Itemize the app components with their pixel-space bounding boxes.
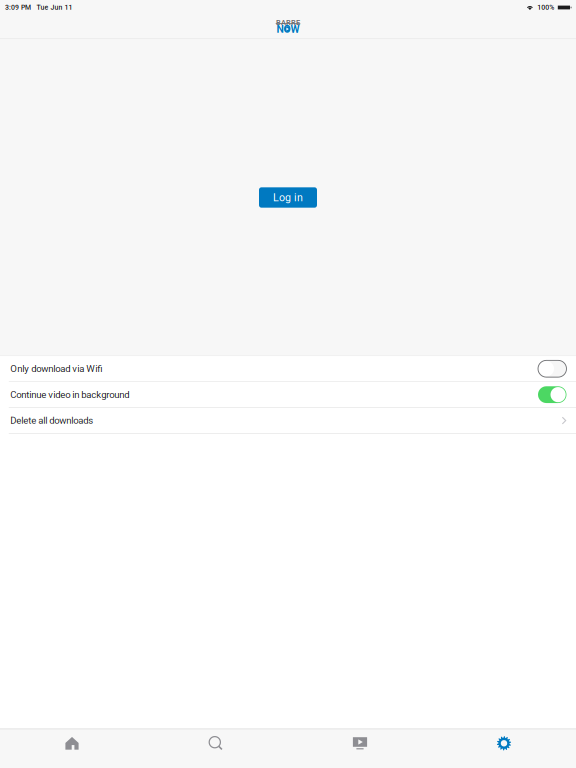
button[interactable]: Only download via Wifi: [0, 356, 576, 381]
staticText: Tue Jun 11: [37, 3, 73, 11]
staticText: BARRE: [276, 18, 300, 27]
button[interactable]: Log in: [259, 187, 317, 208]
button[interactable]: Videos: [288, 729, 432, 757]
button[interactable]: Continue video in background: [0, 382, 576, 407]
staticText: Log in: [273, 191, 303, 204]
staticText: Only download via Wifi: [10, 363, 102, 374]
staticText: 100%: [537, 3, 554, 11]
button[interactable]: Delete all downloads: [0, 408, 576, 433]
staticText: Delete all downloads: [10, 415, 93, 426]
staticText: NOW: [276, 23, 299, 35]
staticText: 3:09 PM: [5, 3, 31, 11]
button[interactable]: Search: [144, 729, 288, 757]
button[interactable]: Home: [0, 729, 144, 757]
staticText: Continue video in background: [10, 389, 129, 400]
button[interactable]: Settings: [432, 729, 576, 757]
